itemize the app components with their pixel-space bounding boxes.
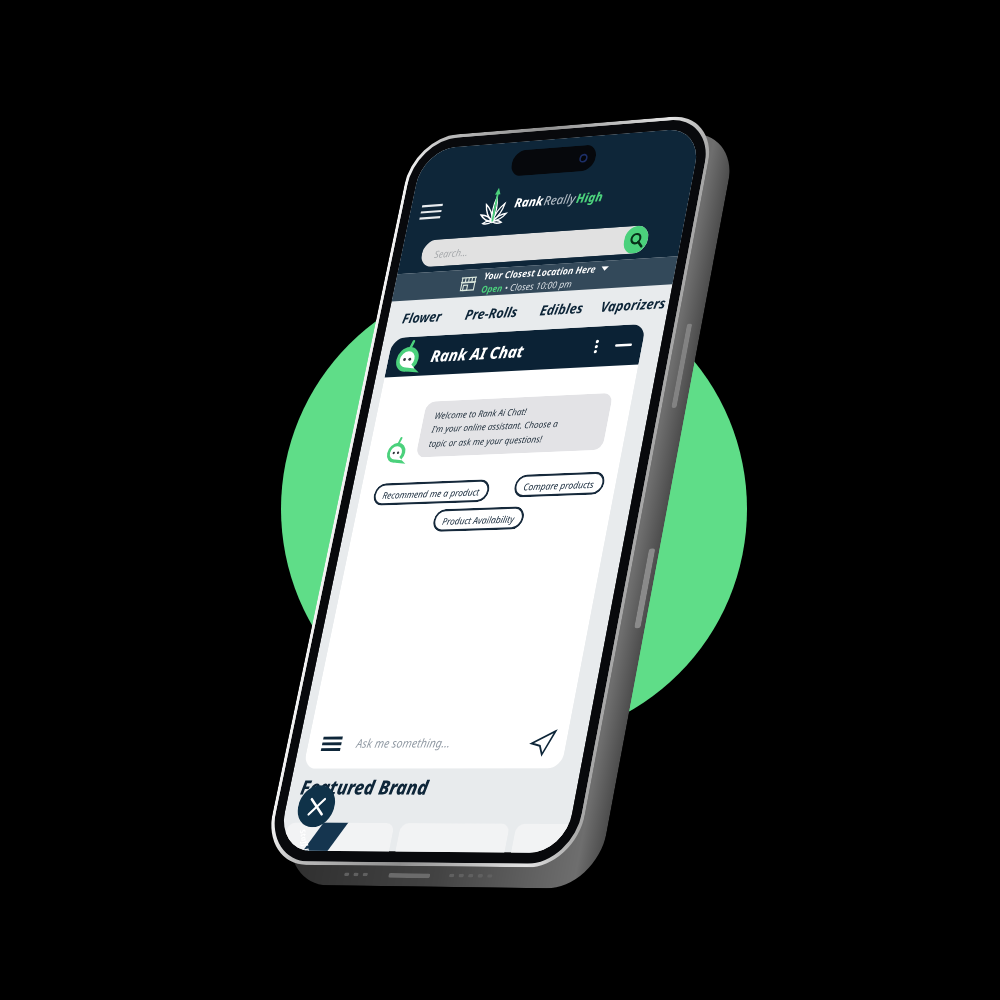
- button[interactable]: Minimize chat: [613, 336, 634, 355]
- button[interactable]: Recommend me a product: [372, 479, 491, 506]
- button[interactable]: Staff Pick: [282, 822, 395, 851]
- staticText: • Closes 10:00 pm: [501, 277, 573, 294]
- staticText: Search...: [433, 245, 470, 260]
- button[interactable]: Send message: [529, 730, 556, 755]
- staticText: Pre-Rolls: [463, 302, 520, 324]
- staticText: Edibles: [538, 298, 585, 320]
- staticText: Really: [542, 190, 578, 210]
- button[interactable]: Your Closest Location Here: [392, 256, 678, 301]
- staticText: Rank: [513, 192, 546, 212]
- staticText: Vaporizers: [599, 293, 668, 316]
- button[interactable]: Open navigation menu: [416, 197, 445, 225]
- staticText: Compare products: [522, 477, 596, 493]
- staticText: Open: [480, 281, 504, 295]
- button[interactable]: [511, 824, 570, 853]
- staticText: Welcome to Rank Ai Chat! I'm your online…: [428, 403, 563, 449]
- button[interactable]: Edibles: [522, 289, 600, 328]
- button[interactable]: Vaporizers: [593, 284, 673, 324]
- staticText: Your Closest Location Here: [483, 262, 597, 283]
- button[interactable]: Pre-Rolls: [453, 293, 530, 332]
- staticText: Rank AI Chat: [429, 339, 526, 366]
- staticText: Product Availability: [441, 512, 515, 527]
- button[interactable]: More options: [586, 337, 606, 356]
- staticText: High: [575, 188, 605, 207]
- button[interactable]: Compare products: [512, 471, 606, 498]
- button[interactable]: Close chat: [294, 785, 339, 827]
- button[interactable]: Flower: [384, 297, 460, 336]
- staticText: Featured Brand: [298, 773, 432, 801]
- button[interactable]: Chat options: [320, 733, 344, 755]
- staticText: Staff Pick: [293, 827, 320, 851]
- button[interactable]: Product Availability: [431, 506, 526, 532]
- staticText: Flower: [401, 307, 444, 328]
- staticText: Ask me something...: [355, 734, 453, 751]
- staticText: Recommend me a product: [381, 485, 481, 501]
- button[interactable]: [395, 823, 510, 852]
- button[interactable]: Search...: [419, 225, 651, 267]
